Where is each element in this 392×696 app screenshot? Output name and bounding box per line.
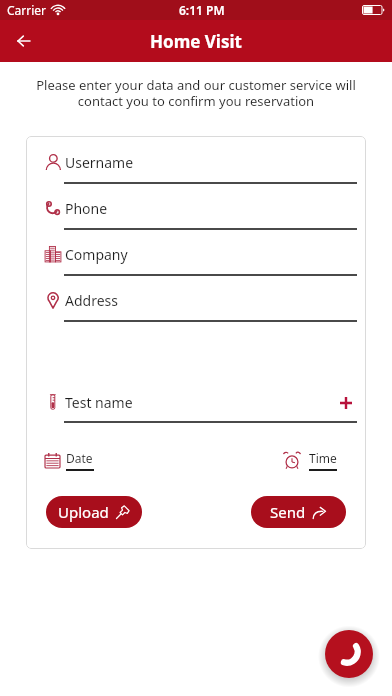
staticText: Carrier <box>7 2 47 18</box>
button[interactable]: Date <box>44 450 94 471</box>
button[interactable] <box>325 630 373 678</box>
staticText: 6:11 PM <box>179 2 225 18</box>
button[interactable]: Username <box>44 148 357 184</box>
button[interactable]: Address <box>44 286 357 322</box>
button[interactable]: Test name <box>44 388 357 423</box>
staticText: Username <box>65 153 134 172</box>
button[interactable]: Send <box>251 496 346 528</box>
staticText: Address <box>65 291 118 310</box>
button[interactable]: Company <box>44 240 357 276</box>
staticText: Test name <box>65 393 133 412</box>
staticText: Please enter your data and our customer … <box>0 76 392 110</box>
button[interactable]: Phone <box>44 194 357 230</box>
staticText: Home Visit <box>150 30 242 53</box>
button[interactable]: Upload <box>46 496 142 528</box>
staticText: Phone <box>65 199 108 218</box>
button[interactable]: Time <box>283 450 337 471</box>
staticText: Time <box>309 450 337 466</box>
button[interactable] <box>8 25 40 57</box>
staticText: Upload <box>58 502 109 522</box>
staticText: Company <box>65 245 128 264</box>
staticText: Send <box>270 502 306 522</box>
staticText: Date <box>66 450 93 466</box>
